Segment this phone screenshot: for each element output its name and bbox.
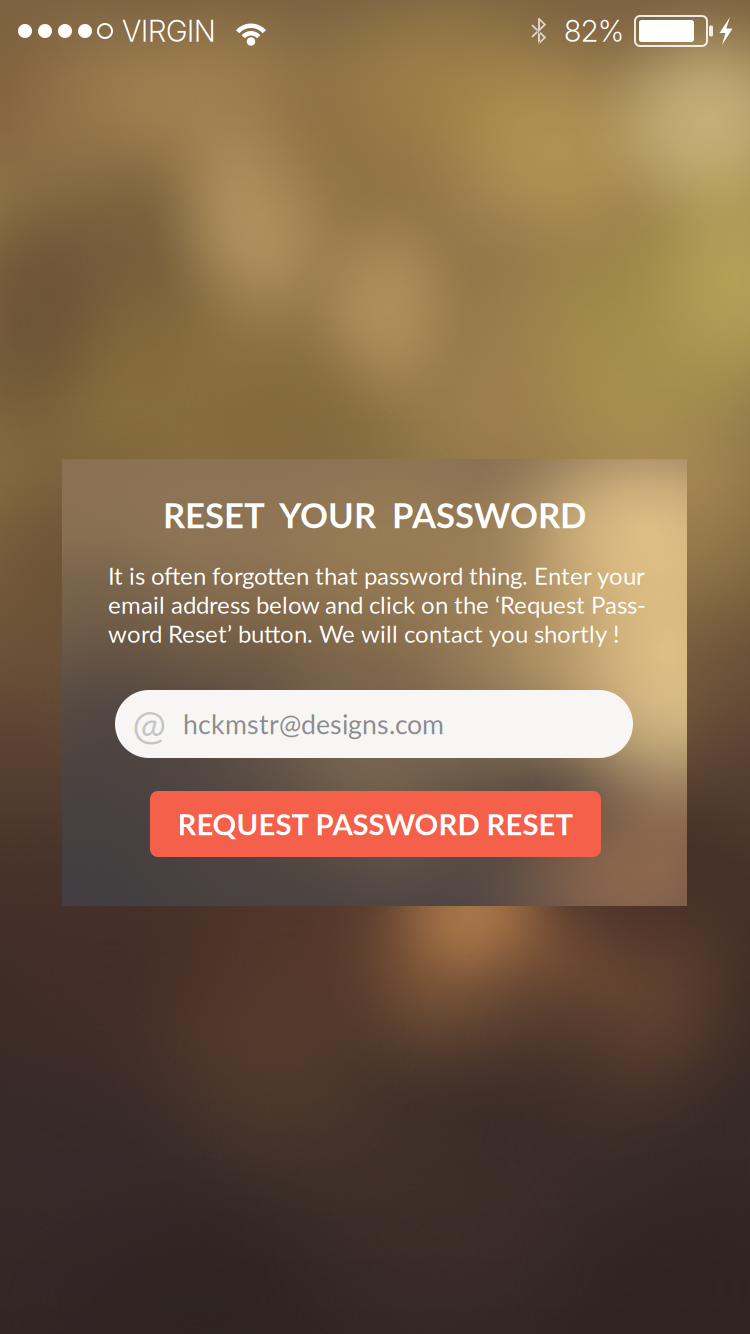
staticText: 82%: [564, 13, 624, 49]
staticText: It is often forgotten that password thin…: [108, 561, 645, 590]
staticText: word Reset’ button. We will contact you …: [108, 619, 619, 648]
staticText: hckmstr@designs.com: [183, 708, 444, 740]
button[interactable]: REQUEST PASSWORD RESET: [150, 791, 601, 857]
staticText: email address below and click on the ‘Re…: [108, 590, 646, 619]
staticText: RESET YOUR PASSWORD: [163, 494, 586, 536]
staticText: @: [132, 700, 165, 748]
staticText: VIRGIN: [122, 13, 216, 49]
staticText: REQUEST PASSWORD RESET: [177, 806, 573, 842]
